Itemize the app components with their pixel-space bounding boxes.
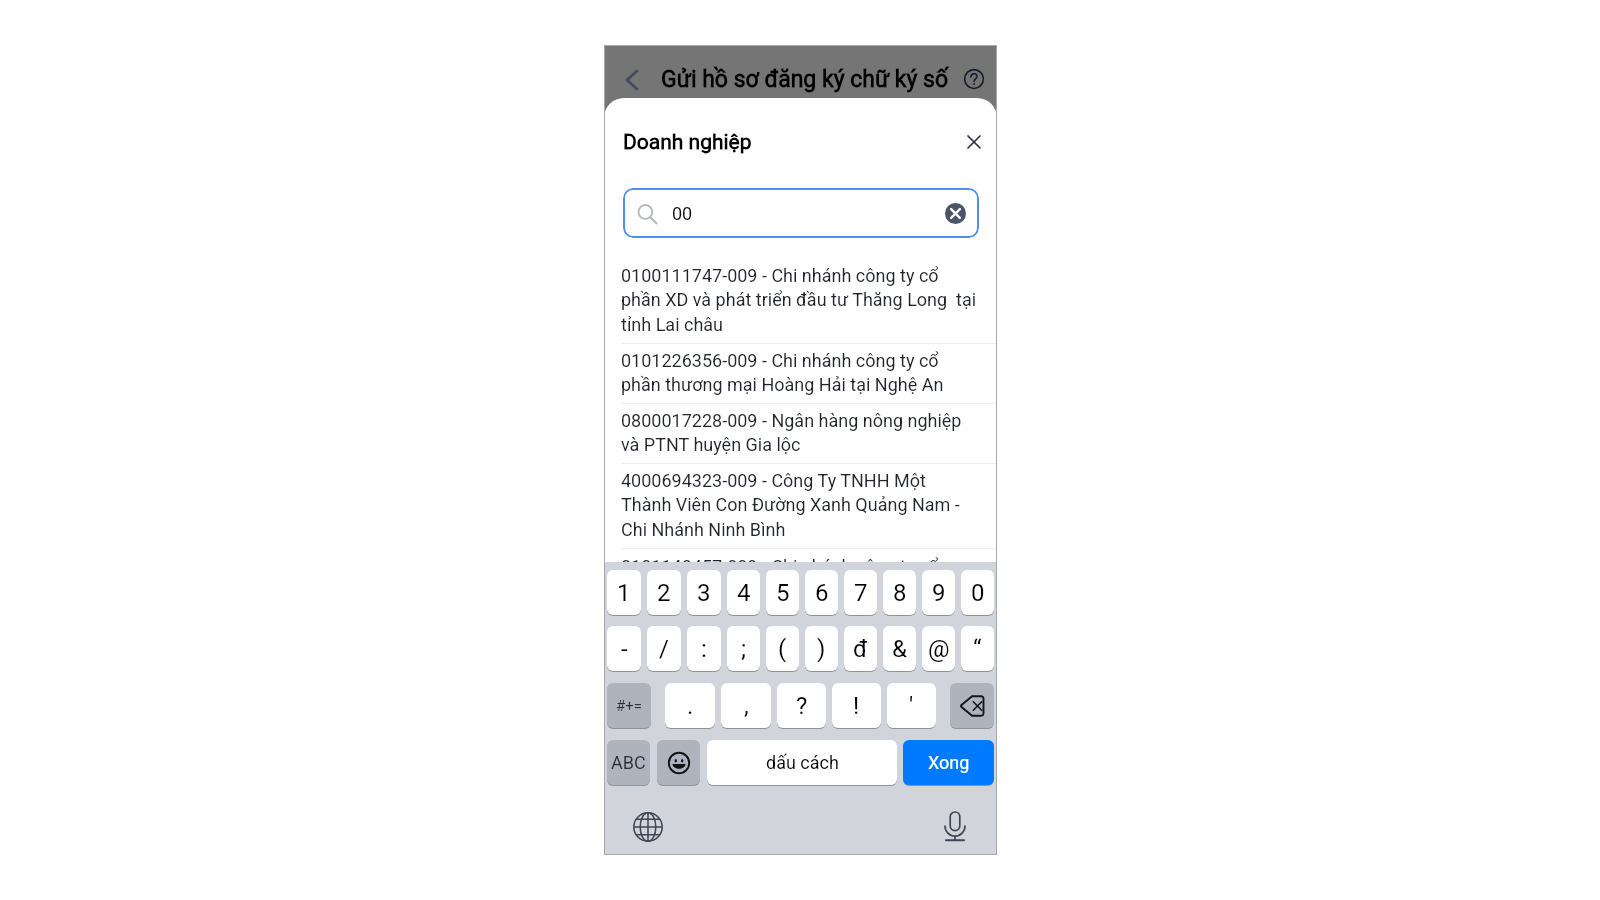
staticText: . [687, 692, 694, 720]
button[interactable]: / [647, 626, 681, 671]
button[interactable]: Change keyboard [630, 809, 666, 845]
staticText: 00 [672, 203, 693, 224]
staticText: 1 [617, 579, 631, 607]
button[interactable]: Dictate [937, 809, 973, 845]
button[interactable]: @ [922, 626, 955, 671]
staticText: 7 [854, 579, 868, 607]
button[interactable]: đ [844, 626, 877, 671]
button[interactable]: - [607, 626, 641, 671]
staticText: ) [817, 635, 826, 663]
button[interactable]: Help [960, 65, 988, 93]
staticText: 0101148457-009 - Chi nhánh công ty cổ ph… [621, 556, 979, 562]
staticText: ( [778, 635, 787, 663]
button[interactable]: dấu cách [707, 740, 897, 785]
staticText: 0800017228-009 - Ngân hàng nông nghiệp v… [621, 410, 979, 456]
staticText: 2 [657, 579, 671, 607]
staticText: 6 [815, 579, 829, 607]
staticText: 0100111747-009 - Chi nhánh công ty cổ ph… [621, 265, 979, 336]
staticText: 5 [776, 579, 790, 607]
button[interactable]: 0101226356-009 - Chi nhánh công ty cổ ph… [621, 350, 997, 410]
staticText: 9 [932, 579, 946, 607]
staticText: “ [973, 635, 982, 663]
button[interactable]: 6 [805, 570, 838, 615]
staticText: 4000694323-009 - Công Ty TNHH Một Thành … [621, 470, 979, 541]
button[interactable]: 0 [961, 570, 994, 615]
button[interactable]: 0101148457-009 - Chi nhánh công ty cổ ph… [621, 555, 997, 562]
button[interactable]: ABC [607, 740, 650, 785]
staticText: , [744, 692, 749, 720]
staticText: Xong [928, 752, 970, 773]
button[interactable]: 0100111747-009 - Chi nhánh công ty cổ ph… [621, 265, 997, 350]
button[interactable]: ? [777, 683, 826, 728]
staticText: 4 [737, 579, 751, 607]
staticText: dấu cách [766, 752, 839, 773]
button[interactable]: 1 [607, 570, 641, 615]
button[interactable]: 5 [766, 570, 799, 615]
button[interactable]: ' [887, 683, 936, 728]
staticText: & [892, 635, 907, 663]
button[interactable]: 4 [727, 570, 760, 615]
staticText: ? [796, 692, 808, 720]
staticText: ! [853, 692, 860, 720]
button[interactable]: “ [961, 626, 994, 671]
staticText: - [621, 635, 628, 663]
button[interactable]: . [665, 683, 715, 728]
button[interactable]: & [883, 626, 916, 671]
button[interactable]: ) [805, 626, 838, 671]
button[interactable]: 00 [623, 188, 979, 238]
staticText: 0 [971, 579, 985, 607]
staticText: #+= [616, 697, 642, 715]
button[interactable]: #+= [607, 683, 651, 728]
staticText: 0101226356-009 - Chi nhánh công ty cổ ph… [621, 350, 979, 396]
staticText: 3 [697, 579, 711, 607]
button[interactable]: 4000694323-009 - Công Ty TNHH Một Thành … [621, 470, 997, 555]
button[interactable]: 7 [844, 570, 877, 615]
staticText: Doanh nghiệp [623, 130, 752, 155]
staticText: : [701, 635, 707, 663]
staticText: 8 [893, 579, 907, 607]
button[interactable]: 8 [883, 570, 916, 615]
staticText: Gửi hồ sơ đăng ký chữ ký số [661, 66, 949, 93]
staticText: đ [853, 635, 868, 663]
button[interactable]: Delete [950, 683, 994, 728]
staticText: ; [741, 635, 747, 663]
staticText: ABC [611, 752, 646, 773]
button[interactable]: 9 [922, 570, 955, 615]
button[interactable]: Xong [903, 740, 994, 785]
button[interactable]: 0800017228-009 - Ngân hàng nông nghiệp v… [621, 410, 997, 470]
staticText: ' [909, 692, 914, 720]
button[interactable]: 2 [647, 570, 681, 615]
staticText: @ [928, 635, 950, 663]
button[interactable]: : [687, 626, 721, 671]
button[interactable]: Emoji [657, 740, 700, 785]
button[interactable]: Close [960, 128, 988, 156]
staticText: / [659, 635, 669, 663]
button[interactable]: 3 [687, 570, 721, 615]
button[interactable]: ; [727, 626, 760, 671]
button[interactable]: , [721, 683, 771, 728]
button[interactable]: Clear text [942, 200, 968, 226]
button[interactable]: Back [617, 65, 647, 95]
button[interactable]: ! [832, 683, 881, 728]
button[interactable]: ( [766, 626, 799, 671]
